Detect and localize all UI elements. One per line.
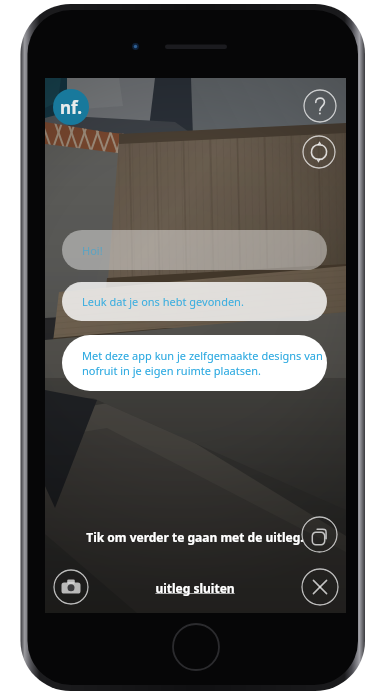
button[interactable]: uitleg sluiten — [140, 579, 250, 597]
button[interactable]: Duplicate design — [301, 516, 338, 553]
button[interactable]: Met deze app kun je zelfgemaakte designs… — [62, 335, 327, 391]
staticText: uitleg sluiten — [155, 580, 235, 596]
staticText: Tik om verder te gaan met de uitleg. — [86, 529, 304, 545]
button[interactable]: Tik om verder te gaan met de uitleg. — [79, 528, 311, 546]
staticText: Leuk dat je ons hebt gevonden. — [82, 294, 244, 309]
staticText: nf. — [60, 96, 83, 119]
button[interactable]: Leuk dat je ons hebt gevonden. — [62, 282, 327, 321]
button[interactable]: nofruit logo — [53, 89, 89, 125]
button[interactable]: Reset view — [302, 135, 336, 169]
button[interactable]: Close — [301, 568, 339, 606]
staticText: Met deze app kun je zelfgemaakte designs… — [82, 348, 323, 378]
button[interactable]: Take photo — [53, 569, 89, 605]
button[interactable]: Help — [303, 89, 337, 123]
staticText: Hoi! — [82, 243, 103, 258]
button[interactable]: Hoi! — [62, 230, 327, 270]
